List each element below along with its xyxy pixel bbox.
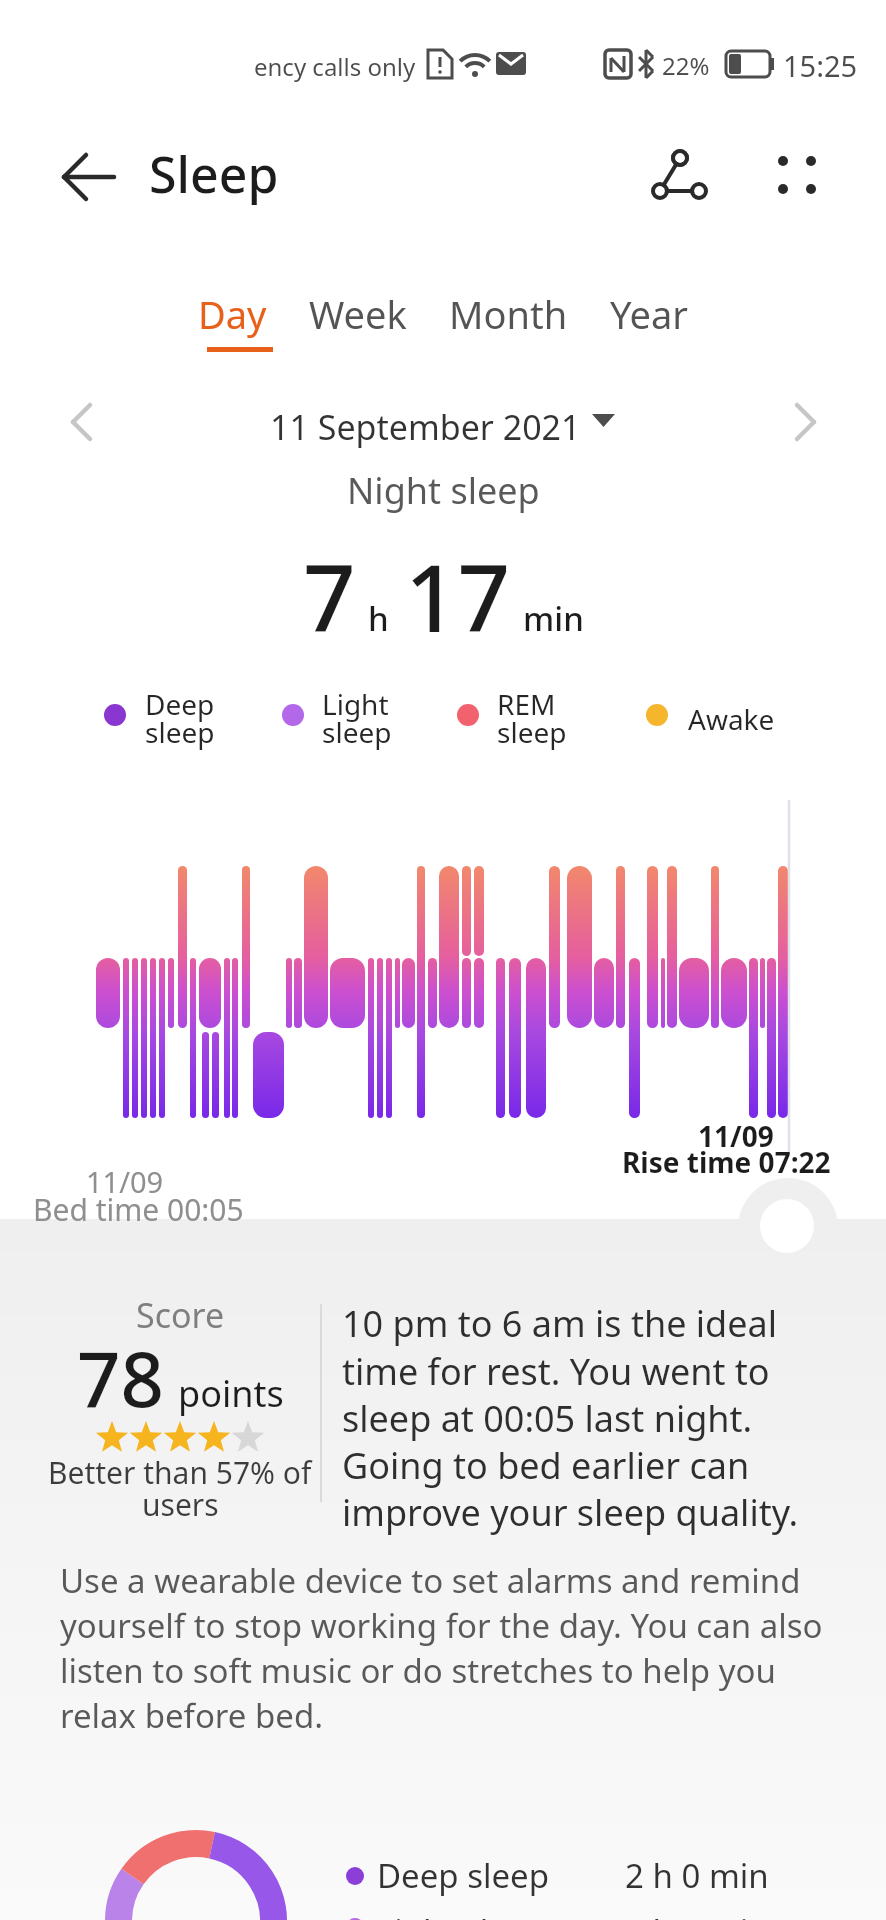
staticText: Month [449, 288, 568, 340]
button[interactable] [760, 1199, 816, 1255]
button[interactable] [780, 395, 840, 451]
staticText: 11/09 [86, 1162, 164, 1201]
button[interactable]: Day [198, 288, 267, 340]
staticText: Year [610, 288, 689, 340]
staticText: Light sleep [377, 1909, 546, 1920]
button[interactable]: Month [449, 288, 568, 340]
staticText: Deep sleep [145, 685, 215, 751]
staticText: Day [198, 288, 267, 340]
staticText: Deep sleep [377, 1853, 550, 1898]
button[interactable]: Deep sleep [377, 1853, 769, 1898]
staticText: 78 [77, 1326, 164, 1430]
staticText: ency calls only [254, 50, 416, 83]
button[interactable] [640, 140, 720, 212]
staticText: Better than 57% of [48, 1452, 312, 1493]
staticText: 10 pm to 6 am is the ideal time for rest… [342, 1299, 799, 1536]
button[interactable]: Year [610, 288, 689, 340]
button[interactable] [762, 144, 830, 208]
staticText: Awake [688, 700, 775, 738]
staticText: Rise time 07:22 [622, 1143, 831, 1181]
staticText: h [368, 596, 389, 641]
staticText: Use a wearable device to set alarms and … [60, 1558, 823, 1738]
staticText: min [523, 596, 584, 641]
staticText: 15:25 [783, 46, 858, 85]
staticText: REM sleep [497, 685, 567, 751]
staticText: Night sleep [347, 466, 540, 515]
staticText: 4 h 6 min [625, 1909, 769, 1920]
staticText: 11/09 [698, 1117, 774, 1155]
staticText: 17 [405, 534, 511, 659]
staticText: users [142, 1484, 219, 1525]
button[interactable] [52, 145, 128, 209]
staticText: points [178, 1369, 284, 1418]
button[interactable]: Week [309, 288, 407, 340]
staticText: Bed time 00:05 [33, 1189, 244, 1230]
staticText: Light sleep [322, 685, 392, 751]
staticText: Week [309, 288, 407, 340]
staticText: 22% [662, 49, 710, 82]
button[interactable] [50, 395, 110, 451]
staticText: Sleep [149, 140, 279, 208]
staticText: Score [136, 1292, 225, 1338]
staticText: 7 [303, 534, 356, 659]
staticText: 2 h 0 min [625, 1853, 769, 1898]
button[interactable]: 11 September 2021 [270, 404, 581, 450]
